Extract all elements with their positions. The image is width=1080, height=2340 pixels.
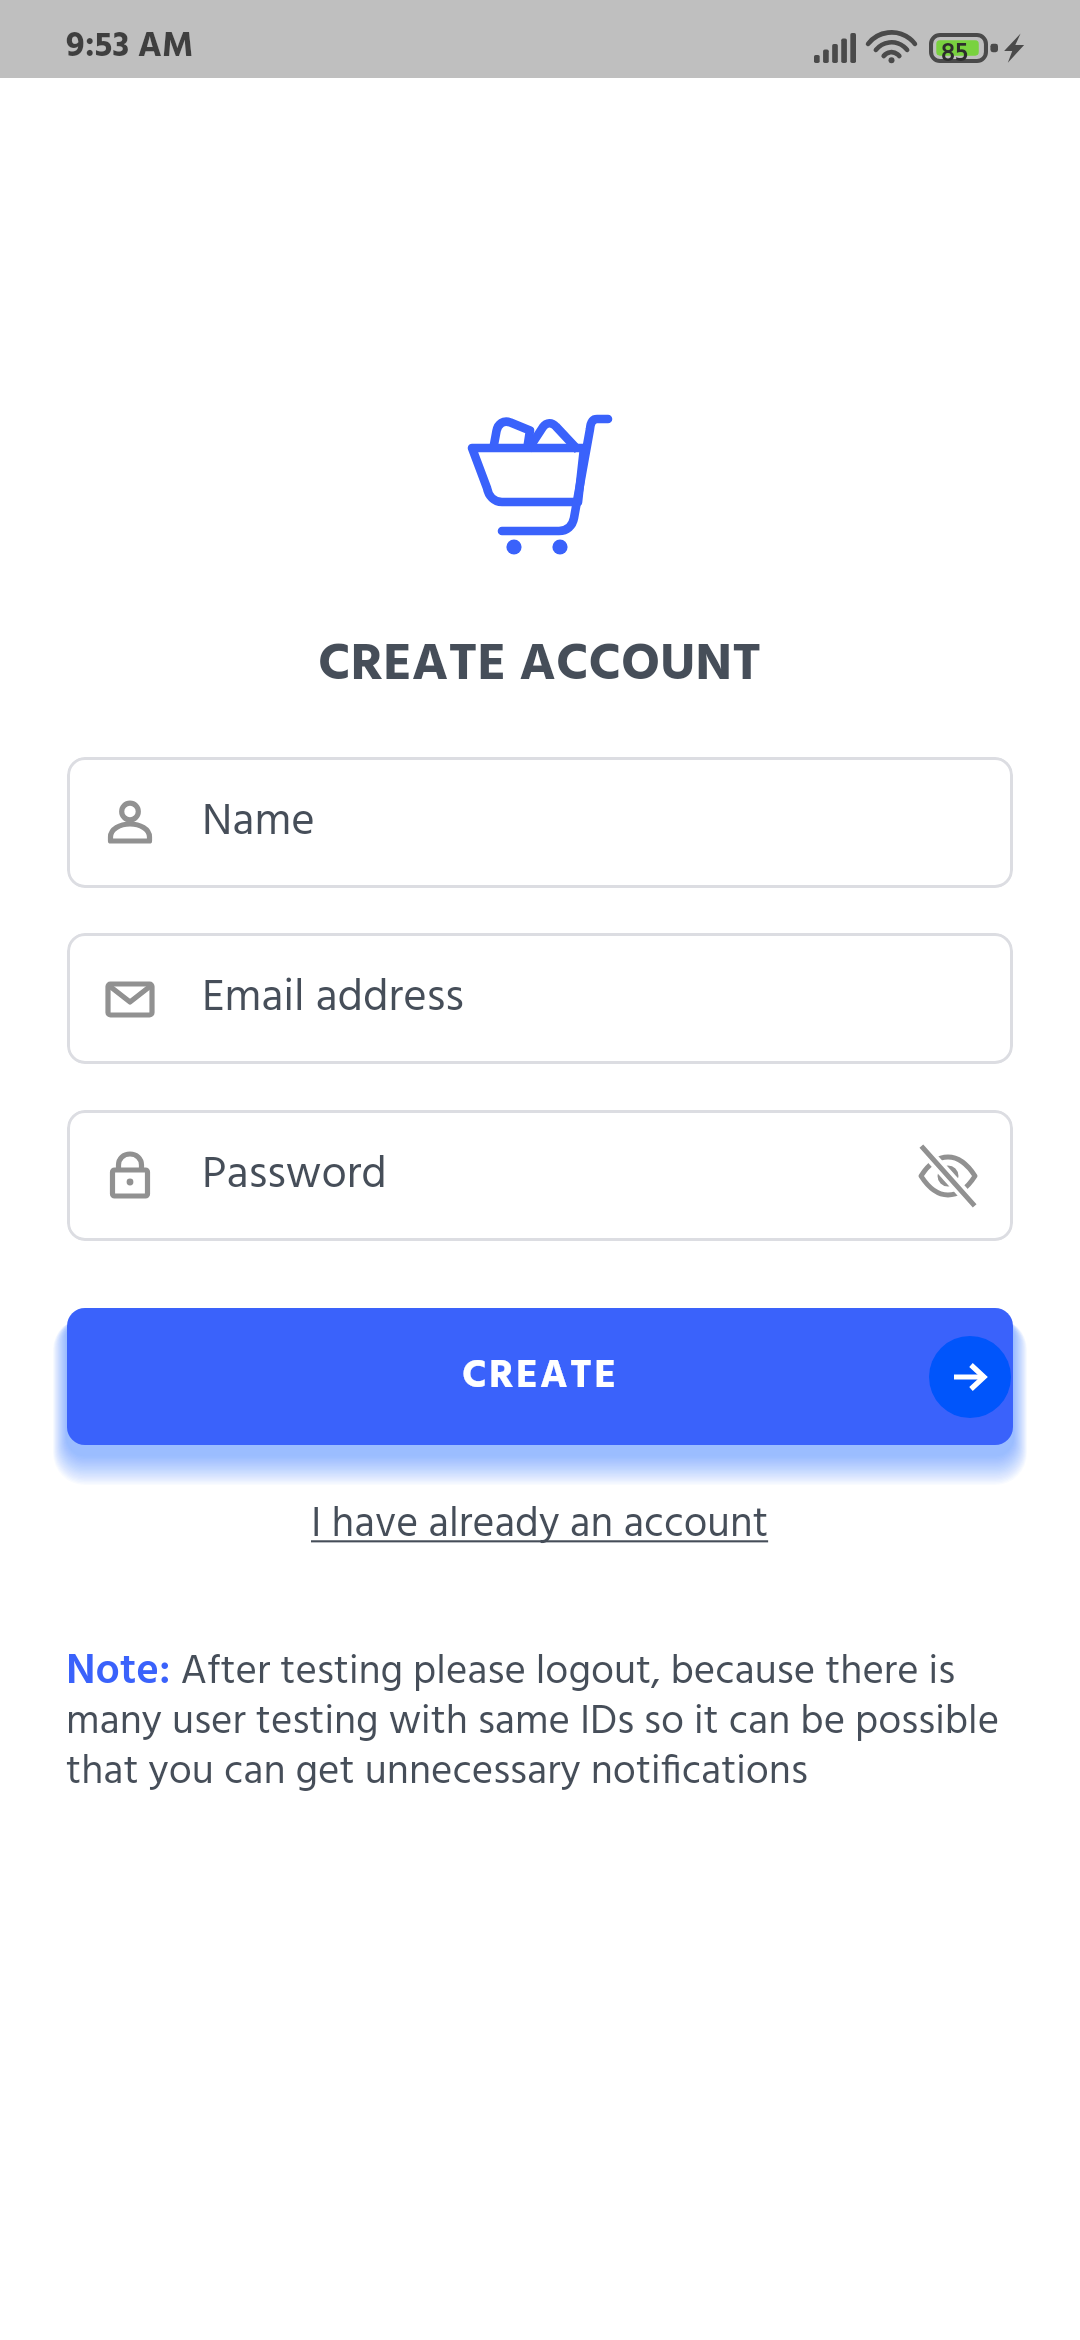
button[interactable]: I have already an account [299, 1486, 781, 1550]
staticText: 85 [941, 34, 969, 64]
button[interactable]: CREATE [67, 1308, 1013, 1445]
button[interactable]: Email address [67, 933, 1013, 1064]
staticText: CREATE [462, 1345, 619, 1409]
staticText: 9:53 AM [66, 19, 194, 75]
staticText: Note: After testing please logout, becau… [66, 1638, 1014, 1805]
staticText: I have already an account [311, 1492, 769, 1544]
button[interactable]: Show password [893, 1121, 1003, 1231]
button[interactable]: Continue [929, 1336, 1011, 1418]
staticText: CREATE ACCOUNT [318, 623, 762, 697]
button[interactable]: Password [67, 1110, 1013, 1241]
staticText: Name [202, 787, 315, 859]
staticText: Email address [202, 963, 464, 1035]
staticText: Password [202, 1140, 387, 1212]
button[interactable]: Name [67, 757, 1013, 888]
